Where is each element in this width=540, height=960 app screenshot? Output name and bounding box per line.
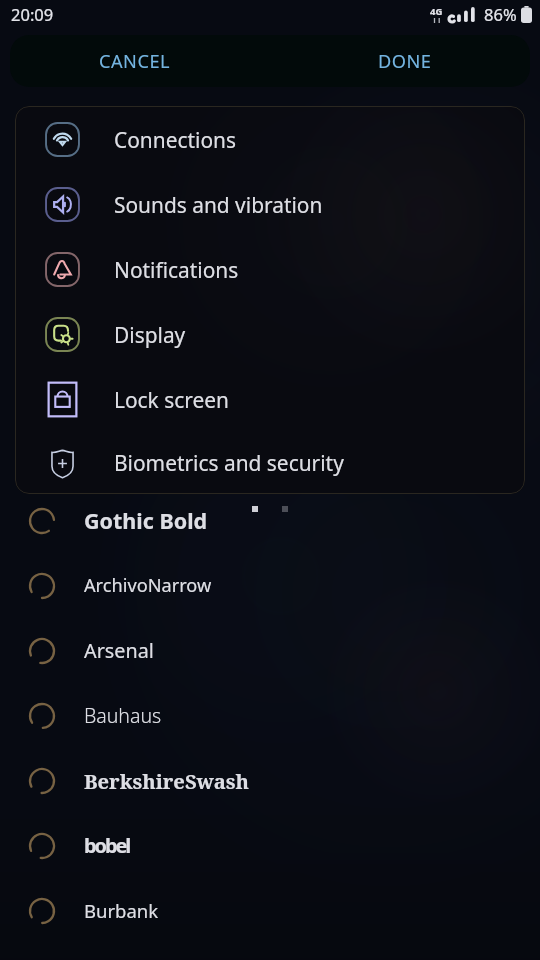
button[interactable]: Lock screen (15, 367, 525, 432)
staticText: bobel (84, 832, 130, 859)
button[interactable]: Arsenal (0, 618, 540, 683)
staticText: BerkshireSwash (84, 767, 249, 795)
button[interactable]: Burbank (0, 878, 540, 943)
staticText: Connections (114, 126, 236, 154)
staticText: 20:09 (11, 3, 54, 25)
button[interactable]: Notifications (15, 237, 525, 302)
staticText: Sounds and vibration (114, 191, 323, 219)
staticText: ArchivoNarrow (84, 573, 212, 598)
staticText: Biometrics and security (114, 449, 344, 477)
staticText: Display (114, 321, 186, 349)
button[interactable]: ArchivoNarrow (0, 553, 540, 618)
button[interactable]: Bauhaus (0, 683, 540, 748)
button[interactable]: Connections (15, 107, 525, 172)
staticText: Burbank (84, 898, 159, 923)
staticText: DONE (378, 49, 432, 74)
button[interactable]: DONE (270, 35, 540, 87)
button[interactable]: Sounds and vibration (15, 172, 525, 237)
staticText: Gothic Bold (84, 506, 208, 535)
staticText: Bauhaus (84, 702, 162, 729)
staticText: Notifications (114, 256, 239, 284)
staticText: 86% (484, 3, 517, 25)
button[interactable]: BerkshireSwash (0, 748, 540, 813)
staticText: CANCEL (99, 49, 171, 74)
button[interactable]: CANCEL (0, 35, 270, 87)
button[interactable]: Gothic Bold (0, 488, 540, 553)
staticText: 4G (430, 5, 443, 18)
button[interactable]: bobel (0, 813, 540, 878)
staticText: Arsenal (84, 637, 154, 664)
button[interactable]: Biometrics and security (15, 432, 525, 494)
button[interactable]: Display (15, 302, 525, 367)
staticText: Lock screen (114, 386, 229, 414)
